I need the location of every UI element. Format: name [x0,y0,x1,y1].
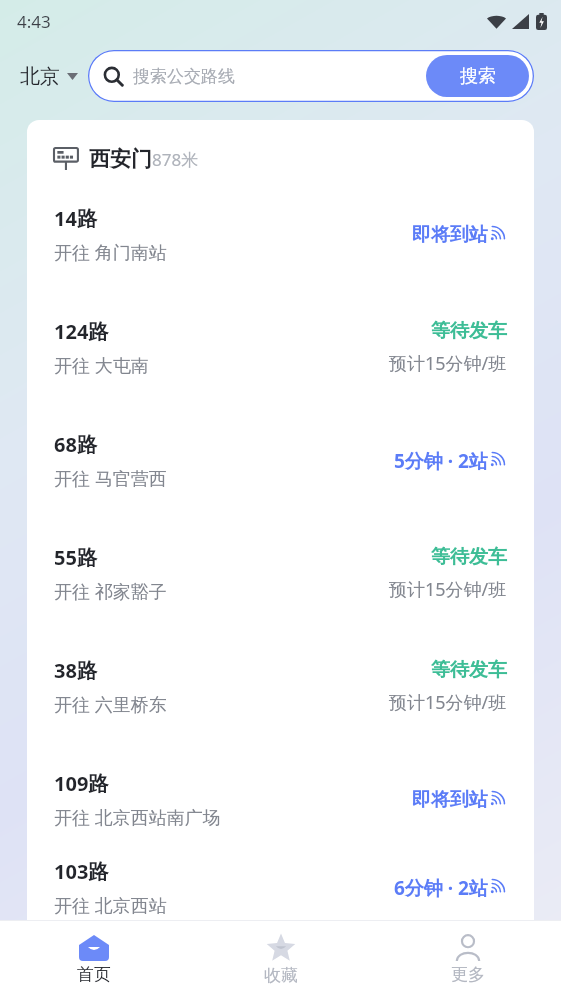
button[interactable]: 109路 [27,743,534,856]
staticText: 878米 [152,148,199,171]
staticText: 北京 [20,64,60,89]
staticText: 14路 [54,205,97,232]
button[interactable]: 124路 [27,291,534,404]
staticText: 109路 [54,770,109,797]
button[interactable]: 68路 [27,404,534,517]
staticText: 预计15分钟/班 [389,351,507,376]
staticText: 预计15分钟/班 [389,577,507,602]
button[interactable]: 首页 [0,921,187,999]
staticText: 55路 [54,544,97,571]
staticText: 搜索公交路线 [133,66,235,87]
staticText: 首页 [77,964,111,985]
staticText: 103路 [54,858,109,885]
button[interactable]: 北京 [0,56,88,97]
button[interactable]: 西安门 [27,120,534,178]
staticText: 6分钟 · 2站 [394,875,488,901]
staticText: 38路 [54,657,97,684]
staticText: 68路 [54,431,97,458]
button[interactable]: 38路 [27,630,534,743]
staticText: 收藏 [264,965,298,986]
button[interactable]: 103路 [27,856,534,920]
staticText: 开往 六里桥东 [54,692,167,717]
staticText: 124路 [54,318,109,345]
staticText: 搜索 [460,65,496,88]
button[interactable]: 搜索公交路线 [88,50,534,102]
staticText: 开往 祁家豁子 [54,579,167,604]
staticText: 开往 北京西站 [54,893,167,918]
staticText: 等待发车 [431,319,507,343]
staticText: 开往 马官营西 [54,466,167,491]
staticText: 开往 大屯南 [54,353,149,378]
staticText: 西安门 [89,146,152,172]
staticText: 预计15分钟/班 [389,690,507,715]
staticText: 等待发车 [431,658,507,682]
button[interactable]: 更多 [374,921,561,999]
button[interactable]: 14路 [27,178,534,291]
staticText: 开往 角门南站 [54,240,167,265]
staticText: 更多 [451,964,485,985]
staticText: 即将到站 [412,788,488,812]
button[interactable]: 搜索 [426,55,529,97]
other: 更多 [454,935,482,961]
button[interactable]: 55路 [27,517,534,630]
staticText: 5分钟 · 2站 [394,448,488,474]
staticText: 即将到站 [412,223,488,247]
staticText: 等待发车 [431,545,507,569]
button[interactable]: 收藏 [187,921,374,999]
staticText: 4:43 [17,10,51,33]
staticText: 开往 北京西站南广场 [54,805,221,830]
